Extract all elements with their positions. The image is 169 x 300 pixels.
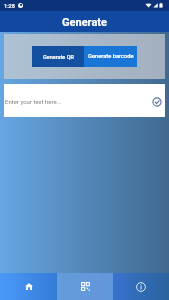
button[interactable]: Generate QR [32, 46, 84, 67]
staticText: Enter your text here... [5, 98, 62, 105]
staticText: Generate barcode [88, 53, 134, 60]
staticText: 1:28 [4, 3, 15, 9]
button[interactable]: Generate [57, 273, 113, 300]
button[interactable]: Generate barcode [84, 46, 137, 67]
staticText: Generate [62, 16, 107, 29]
button[interactable]: Confirm [150, 95, 163, 108]
button[interactable]: Home [0, 273, 57, 300]
staticText: Generate QR [43, 54, 74, 60]
button[interactable]: Info [113, 273, 169, 300]
